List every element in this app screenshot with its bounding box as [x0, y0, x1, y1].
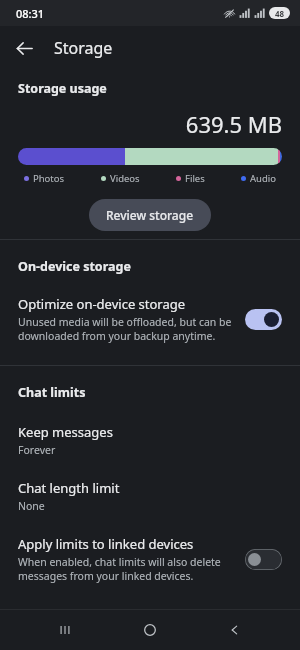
- staticText: 48: [275, 8, 285, 19]
- staticText: 639.5 MB: [18, 109, 282, 139]
- button[interactable]: Optimize on-device storage: [18, 295, 282, 343]
- staticText: On-device storage: [18, 258, 131, 275]
- button[interactable]: Back: [215, 610, 255, 650]
- staticText: Storage: [54, 37, 113, 59]
- button[interactable]: Home: [130, 610, 170, 650]
- staticText: Photos: [33, 172, 65, 185]
- button[interactable]: Review storage: [89, 199, 211, 231]
- staticText: Videos: [110, 172, 140, 185]
- staticText: When enabled, chat limits will also dele…: [18, 555, 235, 583]
- staticText: None: [18, 499, 45, 513]
- staticText: Unused media will be offloaded, but can …: [18, 315, 235, 343]
- button[interactable]: Apply limits to linked devices: [18, 535, 282, 583]
- staticText: Keep messages: [18, 423, 113, 441]
- staticText: Storage usage: [18, 80, 107, 97]
- staticText: Review storage: [106, 207, 194, 223]
- button[interactable]: Toggle on: [245, 309, 282, 330]
- staticText: Files: [185, 172, 205, 185]
- staticText: Chat length limit: [18, 479, 120, 497]
- button[interactable]: Back: [10, 34, 38, 62]
- staticText: Forever: [18, 443, 56, 457]
- button[interactable]: Toggle off: [245, 549, 282, 570]
- staticText: Chat limits: [18, 384, 86, 401]
- staticText: Apply limits to linked devices: [18, 535, 194, 553]
- button[interactable]: Recents: [45, 610, 85, 650]
- button[interactable]: Chat length limit: [18, 479, 282, 513]
- staticText: Optimize on-device storage: [18, 295, 186, 313]
- staticText: Audio: [250, 172, 276, 185]
- button[interactable]: Keep messages: [18, 423, 282, 457]
- staticText: 08:31: [16, 6, 45, 21]
